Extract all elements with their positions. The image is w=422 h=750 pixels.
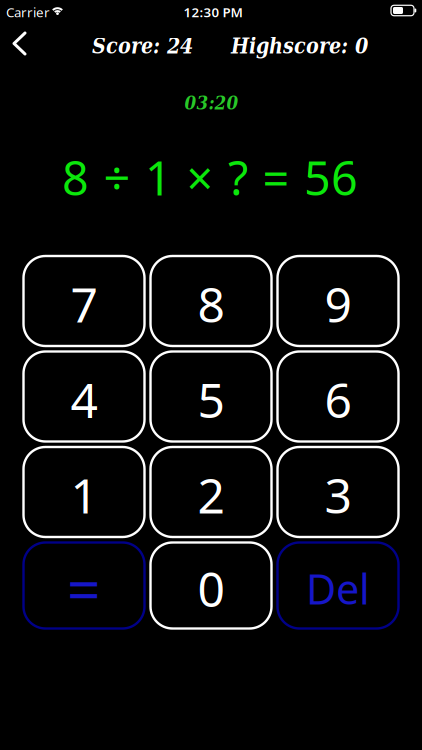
staticText: 6 — [324, 368, 351, 431]
staticText: 8 — [62, 146, 89, 208]
staticText: 3 — [324, 463, 351, 527]
staticText: × — [186, 146, 213, 208]
button[interactable]: 7 — [23, 256, 144, 346]
staticText: = — [262, 146, 289, 208]
staticText: Score: 24 — [92, 33, 193, 59]
staticText: = — [67, 549, 101, 627]
button[interactable]: 3 — [277, 447, 398, 537]
button[interactable]: 6 — [277, 351, 398, 441]
staticText: 56 — [304, 146, 358, 208]
staticText: 7 — [70, 272, 97, 336]
staticText: 9 — [324, 272, 351, 336]
staticText: 1 — [70, 463, 97, 527]
staticText: ? — [228, 146, 248, 208]
button[interactable] — [6, 25, 33, 62]
button[interactable]: 2 — [150, 447, 271, 537]
staticText: 8 — [197, 272, 224, 336]
button[interactable]: 1 — [23, 447, 144, 537]
button[interactable]: Del — [277, 542, 398, 628]
staticText: Del — [306, 561, 370, 616]
staticText: Highscore: 0 — [231, 33, 368, 59]
button[interactable]: 9 — [277, 256, 398, 346]
staticText: 4 — [70, 368, 97, 431]
button[interactable]: 0 — [150, 542, 271, 628]
staticText: 0 — [197, 557, 224, 620]
staticText: 5 — [197, 368, 224, 431]
button[interactable]: 8 — [150, 256, 271, 346]
button[interactable]: = — [23, 542, 144, 628]
staticText: Carrier — [6, 3, 50, 21]
button[interactable]: 4 — [23, 351, 144, 441]
staticText: 2 — [197, 463, 224, 527]
staticText: 12:30 PM — [183, 3, 242, 21]
button[interactable]: 5 — [150, 351, 271, 441]
staticText: ÷ — [103, 146, 130, 208]
staticText: 1 — [145, 146, 172, 208]
staticText: 03:20 — [184, 92, 238, 114]
